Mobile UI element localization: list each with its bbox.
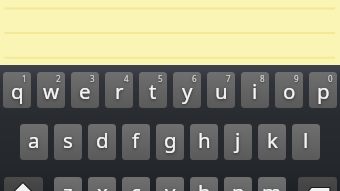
- button[interactable]: z: [54, 177, 82, 191]
- staticText: a: [28, 126, 40, 154]
- button[interactable]: l: [292, 124, 320, 160]
- staticText: o: [283, 77, 296, 105]
- staticText: h: [198, 126, 211, 154]
- staticText: x: [97, 178, 108, 191]
- button[interactable]: q: [3, 72, 31, 108]
- staticText: e: [79, 77, 91, 105]
- button[interactable]: e: [71, 72, 99, 108]
- staticText: 4: [124, 73, 129, 84]
- staticText: b: [198, 178, 211, 191]
- button[interactable]: s: [54, 124, 82, 160]
- staticText: f: [132, 126, 140, 154]
- staticText: c: [131, 178, 141, 191]
- staticText: 2: [56, 73, 61, 84]
- button[interactable]: v: [156, 177, 184, 191]
- staticText: l: [303, 126, 309, 154]
- staticText: 8: [260, 73, 265, 84]
- staticText: 5: [158, 73, 163, 84]
- staticText: g: [164, 126, 177, 154]
- staticText: 7: [226, 73, 231, 84]
- button[interactable]: f: [122, 124, 150, 160]
- staticText: v: [165, 178, 176, 191]
- staticText: 1: [22, 73, 27, 84]
- staticText: y: [182, 77, 193, 105]
- button[interactable]: j: [224, 124, 252, 160]
- button[interactable]: d: [88, 124, 116, 160]
- button[interactable]: a: [20, 124, 48, 160]
- staticText: n: [232, 178, 245, 191]
- staticText: k: [267, 126, 278, 154]
- staticText: 9: [294, 73, 299, 84]
- button[interactable]: Shift: [4, 177, 43, 191]
- button[interactable]: x: [88, 177, 116, 191]
- button[interactable]: r: [105, 72, 133, 108]
- staticText: s: [63, 126, 73, 154]
- staticText: i: [252, 77, 258, 105]
- button[interactable]: i: [241, 72, 269, 108]
- button[interactable]: b: [190, 177, 218, 191]
- staticText: u: [215, 77, 228, 105]
- staticText: 0: [328, 73, 333, 84]
- button[interactable]: t: [139, 72, 167, 108]
- button[interactable]: Delete: [298, 177, 337, 191]
- button[interactable]: k: [258, 124, 286, 160]
- staticText: q: [11, 77, 24, 105]
- staticText: r: [115, 77, 124, 105]
- staticText: d: [96, 126, 109, 154]
- staticText: p: [317, 77, 330, 105]
- staticText: z: [63, 178, 73, 191]
- staticText: m: [262, 178, 282, 191]
- staticText: 6: [192, 73, 197, 84]
- button[interactable]: m: [258, 177, 286, 191]
- button[interactable]: w: [37, 72, 65, 108]
- staticText: t: [149, 77, 157, 105]
- staticText: 3: [90, 73, 95, 84]
- button[interactable]: h: [190, 124, 218, 160]
- button[interactable]: c: [122, 177, 150, 191]
- staticText: w: [43, 77, 60, 105]
- button[interactable]: p: [309, 72, 337, 108]
- button[interactable]: o: [275, 72, 303, 108]
- button[interactable]: u: [207, 72, 235, 108]
- button[interactable]: n: [224, 177, 252, 191]
- button[interactable]: y: [173, 72, 201, 108]
- staticText: j: [235, 126, 241, 154]
- button[interactable]: g: [156, 124, 184, 160]
